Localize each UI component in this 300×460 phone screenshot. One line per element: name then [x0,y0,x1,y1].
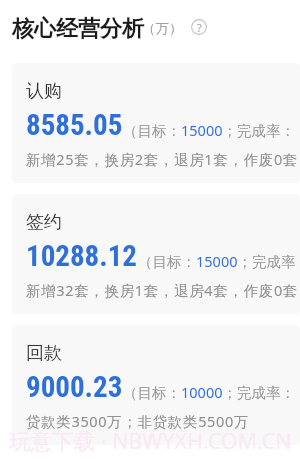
staticText: 10288.12 [26,239,138,273]
staticText: 新增32套，换房1套，退房4套，作废0套 [26,280,298,300]
button[interactable]: 认购 [12,63,300,183]
button[interactable]: 签约 [12,194,300,314]
staticText: 8585.05 [26,108,123,142]
staticText: （目标：15000；完成率： [138,251,300,271]
staticText: 签约 [26,211,62,234]
staticText: 核心经营分析 [12,15,144,43]
staticText: ? [197,20,202,35]
button[interactable]: 帮助 [191,19,207,35]
staticText: 9000.23 [26,370,123,404]
staticText: 玩意下载 · NBWYXH.COM.CN [9,426,292,455]
staticText: 贷款类3500万；非贷款类5500万 [26,411,250,431]
staticText: 认购 [26,80,62,103]
staticText: 回款 [26,342,62,365]
button[interactable]: 回款 [12,325,300,445]
staticText: 新增25套，换房2套，退房1套，作废0套 [26,149,298,169]
staticText: （目标：10000；完成率： [123,382,295,402]
staticText: （目标：15000；完成率： [123,120,295,140]
staticText: （万） [142,20,183,37]
